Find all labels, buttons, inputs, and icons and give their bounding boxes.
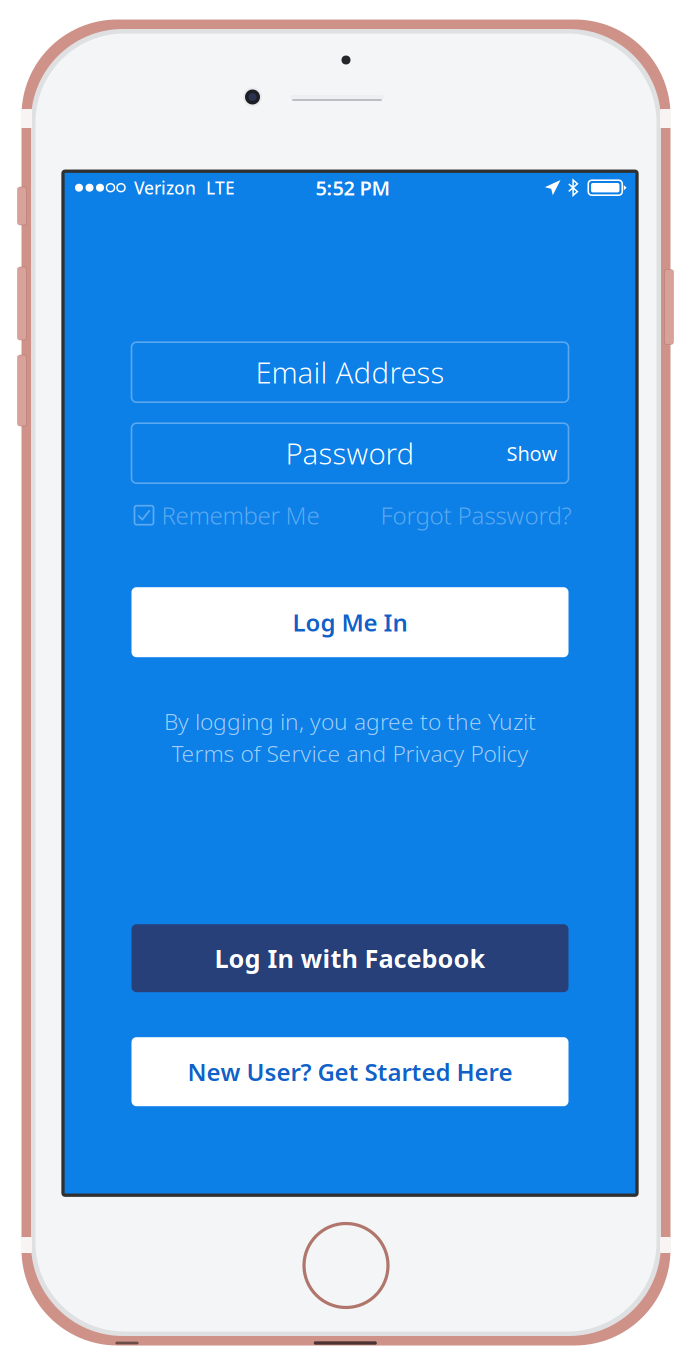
staticText: Log In with Facebook [214, 941, 485, 975]
staticText: Verizon [134, 176, 196, 199]
staticText: Terms of Service and Privacy Policy [171, 738, 528, 768]
button[interactable]: Forgot Password? [380, 499, 571, 531]
button[interactable]: Log Me In [131, 587, 568, 657]
button[interactable]: Log In with Facebook [131, 924, 568, 992]
staticText: 5:52 PM [315, 174, 390, 201]
button[interactable]: Remember Me [134, 499, 319, 531]
staticText: Email Address [255, 353, 444, 392]
button[interactable]: Password [131, 423, 568, 483]
staticText: Remember Me [161, 499, 319, 531]
staticText: Forgot Password? [380, 499, 571, 531]
staticText: Password [285, 434, 414, 473]
staticText: Show [506, 440, 557, 466]
staticText: LTE [206, 176, 235, 199]
button[interactable]: New User? Get Started Here [131, 1037, 568, 1106]
button[interactable]: Email Address [131, 342, 568, 402]
staticText: Log Me In [292, 606, 407, 638]
staticText: By logging in, you agree to the Yuzit [164, 706, 536, 736]
staticText: New User? Get Started Here [187, 1056, 512, 1088]
